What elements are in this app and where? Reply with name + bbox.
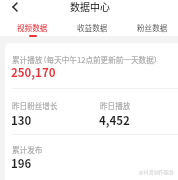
- staticText: 粉丝数据: [137, 22, 168, 33]
- staticText: 数据中心: [70, 0, 110, 13]
- button[interactable]: 粉丝数据: [129, 20, 175, 38]
- staticText: 累计发布: [12, 144, 43, 155]
- button[interactable]: Back: [6, 0, 23, 15]
- staticText: 4,452: [99, 112, 130, 129]
- button[interactable]: 视频数据: [9, 20, 55, 38]
- staticText: 196: [11, 155, 32, 172]
- staticText: 昨日粉丝增长: [12, 100, 58, 111]
- button[interactable]: 收益数据: [69, 20, 115, 38]
- staticText: 昨日播放: [100, 100, 131, 111]
- staticText: 收益数据: [77, 22, 108, 33]
- staticText: 250,170: [11, 64, 56, 81]
- staticText: 视频数据: [17, 22, 48, 33]
- staticText: （每天中午12点前更新前一天数据）: [39, 54, 162, 65]
- staticText: 累计播放: [12, 54, 43, 65]
- staticText: 130: [11, 112, 32, 129]
- staticText: @抖音创作服务: [139, 168, 174, 175]
